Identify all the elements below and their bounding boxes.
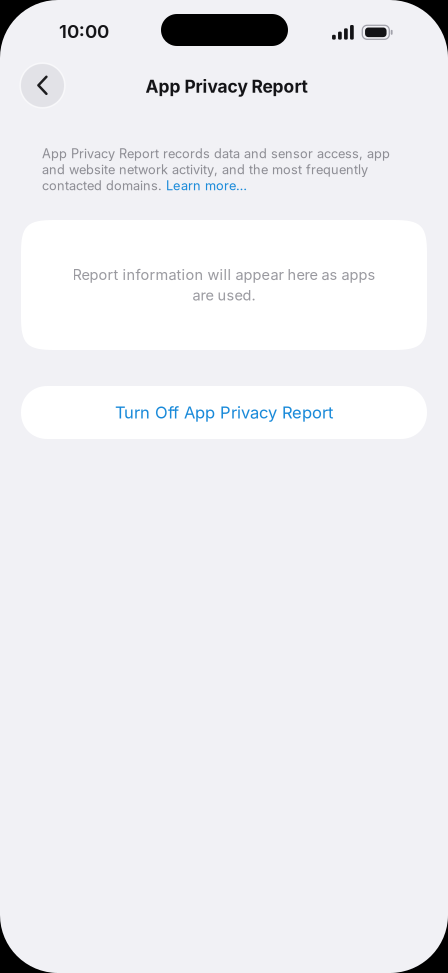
staticText: and website network activity, and the mo… [42, 162, 368, 177]
button[interactable]: Learn more… [166, 178, 247, 193]
staticText: App Privacy Report [145, 76, 307, 97]
staticText: are used. [192, 286, 255, 304]
staticText: Learn more… [166, 178, 247, 193]
staticText: Report information will appear here as a… [72, 266, 375, 283]
button[interactable]: Back [20, 63, 65, 108]
staticText: Turn Off App Privacy Report [115, 402, 333, 422]
staticText: contacted domains. [42, 178, 166, 193]
staticText: App Privacy Report records data and sens… [42, 146, 390, 161]
button[interactable]: Turn Off App Privacy Report [21, 386, 427, 439]
staticText: 10:00 [59, 20, 109, 43]
